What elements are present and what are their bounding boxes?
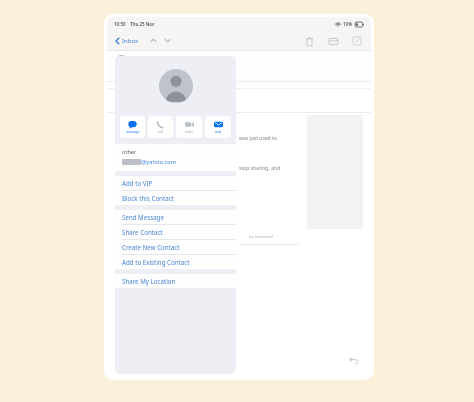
staticText: Share My Location (122, 277, 176, 285)
staticText: Share Contact (122, 228, 163, 236)
button[interactable]: Delete (302, 34, 316, 48)
button[interactable]: call (148, 116, 173, 138)
staticText: mail (215, 130, 222, 134)
staticText: message (126, 130, 140, 134)
staticText: Add to VIP (122, 179, 153, 187)
button[interactable]: other (115, 144, 236, 171)
staticText: video (185, 130, 194, 134)
button[interactable]: Block this Contact (115, 191, 236, 205)
staticText: other (122, 148, 137, 156)
staticText: @yahoo.com (158, 64, 196, 72)
button[interactable]: Inbox (114, 35, 140, 47)
button[interactable]: Create New Contact (115, 240, 236, 254)
button[interactable]: Share My Location (115, 274, 236, 288)
button[interactable]: mail (205, 116, 231, 138)
button[interactable]: Move to folder (326, 34, 340, 48)
staticText: @yahoo.com (141, 158, 177, 166)
button[interactable]: Add to Existing Contact (115, 255, 236, 269)
button[interactable]: Compose (350, 34, 364, 48)
button[interactable]: message (120, 116, 145, 138)
staticText: call (158, 130, 163, 134)
button[interactable]: Send Message (115, 210, 236, 224)
staticText: Send Message (122, 213, 164, 221)
staticText: stop sharing, and (239, 165, 281, 172)
button[interactable]: Share Contact (115, 225, 236, 239)
staticText: Create New Contact (122, 243, 180, 251)
staticText: Block this Contact (122, 194, 174, 202)
staticText: Thu 25 Nov (130, 21, 155, 27)
staticText: Today 10:47 (133, 73, 163, 80)
button[interactable]: Add to VIP (115, 176, 236, 190)
staticText: be answered (249, 234, 274, 239)
button[interactable]: Reply (347, 353, 361, 367)
staticText: 10:50 (114, 21, 126, 27)
staticText: From: (133, 55, 153, 63)
button[interactable]: video (176, 116, 202, 138)
staticText: Add to Existing Contact (122, 258, 190, 266)
button[interactable]: Next message (162, 35, 173, 46)
staticText: Yahoo (153, 55, 171, 63)
staticText: Inbox (122, 37, 139, 45)
staticText: was just used to (239, 135, 277, 142)
staticText: 10% (343, 21, 353, 27)
button[interactable]: Previous message (148, 35, 159, 46)
